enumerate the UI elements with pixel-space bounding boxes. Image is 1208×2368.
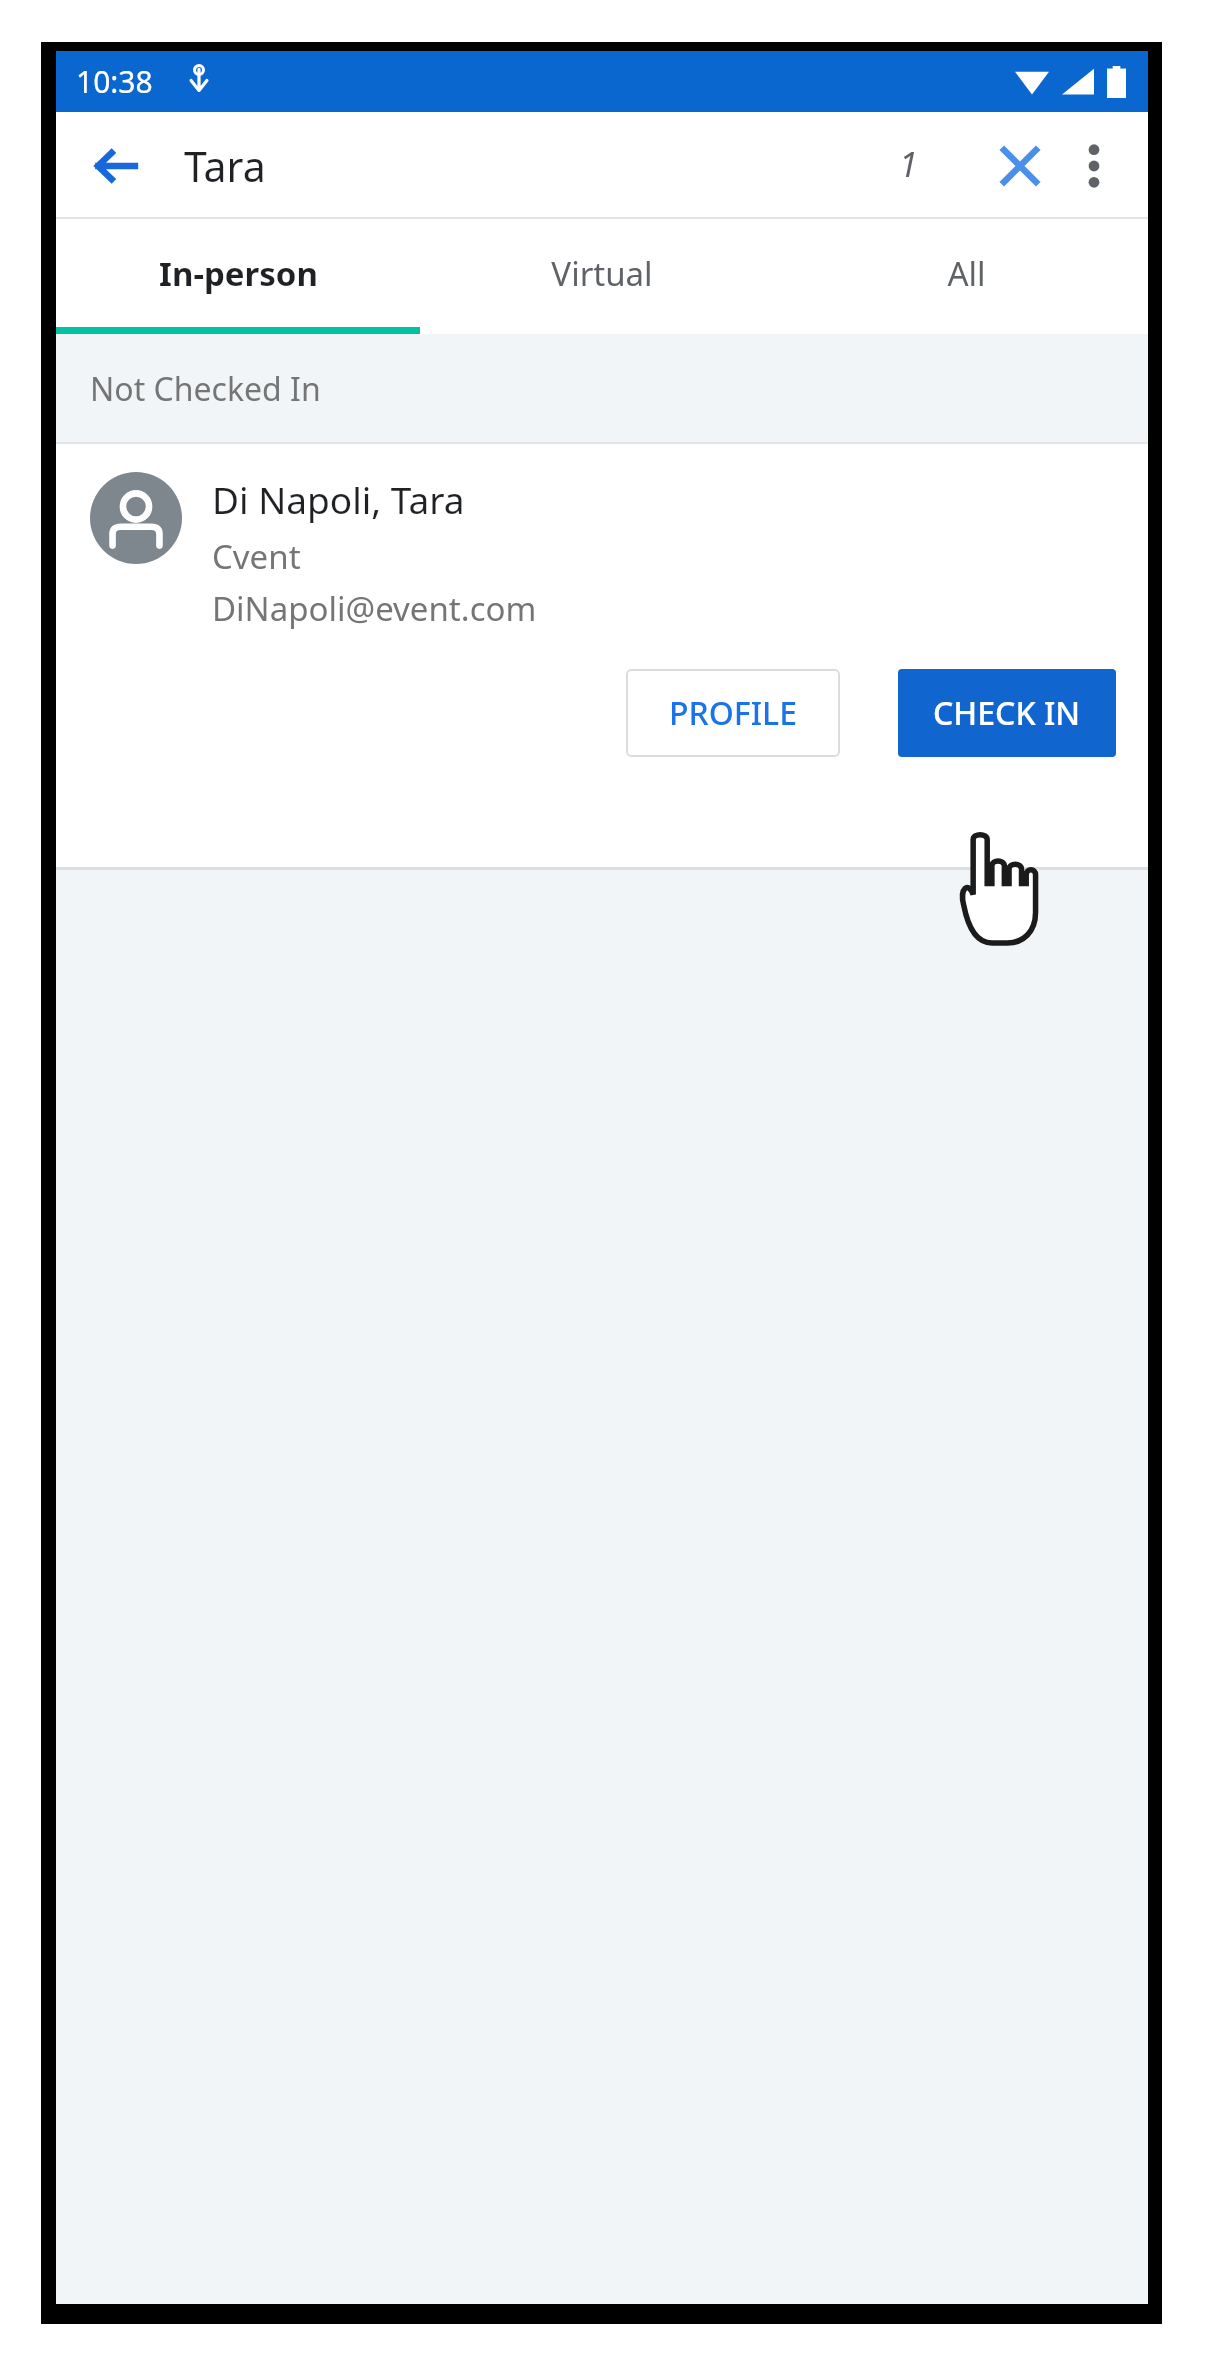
staticText: Not Checked In: [90, 367, 321, 411]
staticText: Di Napoli, Tara: [212, 474, 465, 524]
staticText: All: [947, 251, 986, 296]
staticText: DiNapoli@event.com: [212, 586, 537, 631]
button[interactable]: More options: [1056, 128, 1132, 204]
button[interactable]: In-person: [56, 219, 420, 327]
staticText: In-person: [159, 251, 318, 296]
staticText: Tara: [184, 138, 266, 194]
staticText: 10:38: [76, 61, 153, 102]
button[interactable]: Di Napoli, Tara: [56, 444, 1148, 870]
staticText: 1: [899, 141, 918, 187]
staticText: Virtual: [551, 251, 653, 296]
button[interactable]: Close: [978, 124, 1062, 208]
button[interactable]: Back: [74, 124, 158, 208]
button[interactable]: CHECK IN: [898, 669, 1116, 757]
button[interactable]: All: [784, 219, 1148, 327]
staticText: Cvent: [212, 534, 301, 579]
staticText: PROFILE: [669, 691, 797, 735]
staticText: CHECK IN: [933, 691, 1081, 735]
button[interactable]: PROFILE: [626, 669, 840, 757]
button[interactable]: Virtual: [420, 219, 784, 327]
